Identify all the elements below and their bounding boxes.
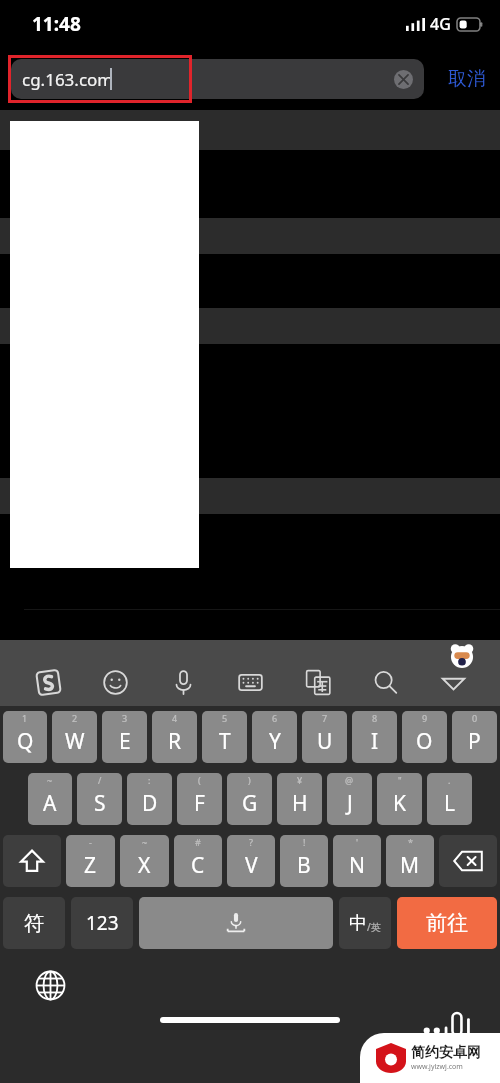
button[interactable] — [0, 218, 500, 254]
button[interactable]: 3 — [102, 711, 147, 763]
staticText: www.jylzwj.com — [411, 1062, 463, 1072]
staticText: # — [195, 836, 201, 848]
button[interactable]: - — [66, 835, 115, 887]
staticText: D — [142, 789, 158, 818]
button[interactable] — [0, 308, 500, 344]
staticText: ' — [356, 836, 359, 848]
staticText: W — [65, 727, 85, 756]
button[interactable]: Space / voice — [139, 897, 333, 949]
button[interactable]: * — [386, 835, 434, 887]
staticText: K — [393, 789, 406, 818]
staticText: V — [245, 851, 258, 880]
button[interactable]: 4 — [152, 711, 197, 763]
staticText: C — [191, 851, 205, 880]
staticText: U — [317, 727, 333, 756]
staticText: ¥ — [297, 774, 303, 786]
button[interactable]: 8 — [352, 711, 397, 763]
staticText: ! — [303, 836, 306, 848]
staticText: 3 — [122, 712, 128, 724]
staticText: . — [448, 774, 451, 786]
staticText: ( — [198, 774, 201, 786]
button[interactable]: Search — [365, 662, 405, 702]
button[interactable]: Emoji — [95, 662, 135, 702]
staticText: T — [219, 727, 231, 756]
staticText: E — [119, 727, 131, 756]
button[interactable]: 2 — [52, 711, 97, 763]
button[interactable]: Assistant — [450, 644, 474, 668]
button[interactable]: Clear text — [391, 67, 415, 91]
staticText: ~ — [142, 836, 148, 848]
button[interactable]: Change keyboard language — [32, 967, 68, 1003]
button[interactable] — [0, 110, 500, 150]
button[interactable]: Hide keyboard — [433, 662, 473, 702]
staticText: 简约安卓网 — [411, 1044, 481, 1062]
staticText: : — [148, 774, 151, 786]
staticText: 8 — [372, 712, 378, 724]
staticText: I — [371, 727, 379, 756]
staticText: 5 — [222, 712, 228, 724]
button[interactable]: . — [427, 773, 472, 825]
staticText: Z — [84, 851, 97, 880]
staticText: 9 — [422, 712, 428, 724]
button[interactable]: cg.163.com — [11, 59, 424, 99]
staticText: O — [416, 727, 433, 756]
button[interactable]: 7 — [302, 711, 347, 763]
button[interactable]: ) — [227, 773, 272, 825]
staticText: ? — [249, 836, 253, 848]
button[interactable]: / — [77, 773, 122, 825]
button[interactable]: 1 — [3, 711, 47, 763]
button[interactable]: Keyboard layout — [230, 662, 270, 702]
button[interactable]: Backspace — [439, 835, 497, 887]
button[interactable]: ' — [333, 835, 381, 887]
button[interactable]: Sogou input — [28, 662, 68, 702]
button[interactable]: Translate — [298, 662, 338, 702]
button[interactable]: ( — [177, 773, 222, 825]
button[interactable]: Shift — [3, 835, 61, 887]
staticText: 6 — [272, 712, 278, 724]
button[interactable]: ¥ — [277, 773, 322, 825]
staticText: ~ — [47, 774, 53, 786]
staticText: H — [292, 789, 308, 818]
staticText: 4G — [430, 13, 451, 35]
button[interactable] — [0, 478, 500, 514]
button[interactable]: 5 — [202, 711, 247, 763]
button[interactable]: : — [127, 773, 172, 825]
button[interactable]: # — [174, 835, 222, 887]
staticText: R — [168, 727, 182, 756]
staticText: M — [400, 851, 420, 880]
button[interactable]: 中 — [339, 897, 391, 949]
staticText: 0 — [472, 712, 478, 724]
button[interactable]: 9 — [402, 711, 447, 763]
staticText: F — [194, 789, 205, 818]
staticText: 7 — [322, 712, 328, 724]
button[interactable]: 符 — [3, 897, 65, 949]
staticText: /英 — [367, 920, 381, 934]
button[interactable]: 0 — [452, 711, 497, 763]
staticText: ) — [248, 774, 251, 786]
button[interactable]: ! — [280, 835, 328, 887]
button[interactable]: 6 — [252, 711, 297, 763]
staticText: L — [444, 789, 456, 818]
button[interactable]: " — [377, 773, 422, 825]
staticText: 2 — [72, 712, 78, 724]
staticText: @ — [345, 774, 354, 786]
button[interactable]: ~ — [28, 773, 72, 825]
staticText: - — [89, 836, 92, 848]
button[interactable]: @ — [327, 773, 372, 825]
staticText: cg.163.com — [22, 68, 114, 91]
staticText: P — [468, 727, 481, 756]
button[interactable]: Voice input — [163, 662, 203, 702]
button[interactable]: ~ — [120, 835, 169, 887]
button[interactable]: 取消 — [440, 59, 494, 99]
staticText: N — [349, 851, 365, 880]
button[interactable]: 123 — [71, 897, 133, 949]
staticText: 符 — [24, 911, 44, 936]
button[interactable]: 前往 — [397, 897, 497, 949]
staticText: 1 — [22, 712, 28, 724]
staticText: 中 — [349, 912, 367, 935]
staticText: * — [408, 836, 413, 848]
staticText: 4 — [172, 712, 178, 724]
button[interactable]: ? — [227, 835, 275, 887]
staticText: J — [347, 789, 353, 818]
staticText: S — [94, 789, 106, 818]
